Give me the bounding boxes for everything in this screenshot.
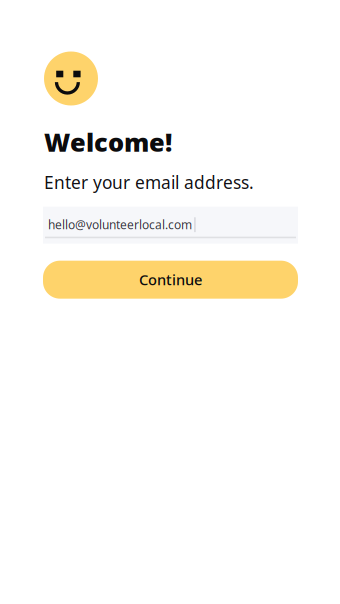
- button[interactable]: Continue: [43, 261, 298, 299]
- button[interactable]: Email address: [43, 207, 298, 244]
- staticText: hello@volunteerlocal.com: [48, 217, 192, 233]
- staticText: Enter your email address.: [44, 171, 254, 194]
- staticText: Continue: [139, 270, 202, 289]
- staticText: Welcome!: [44, 125, 172, 159]
